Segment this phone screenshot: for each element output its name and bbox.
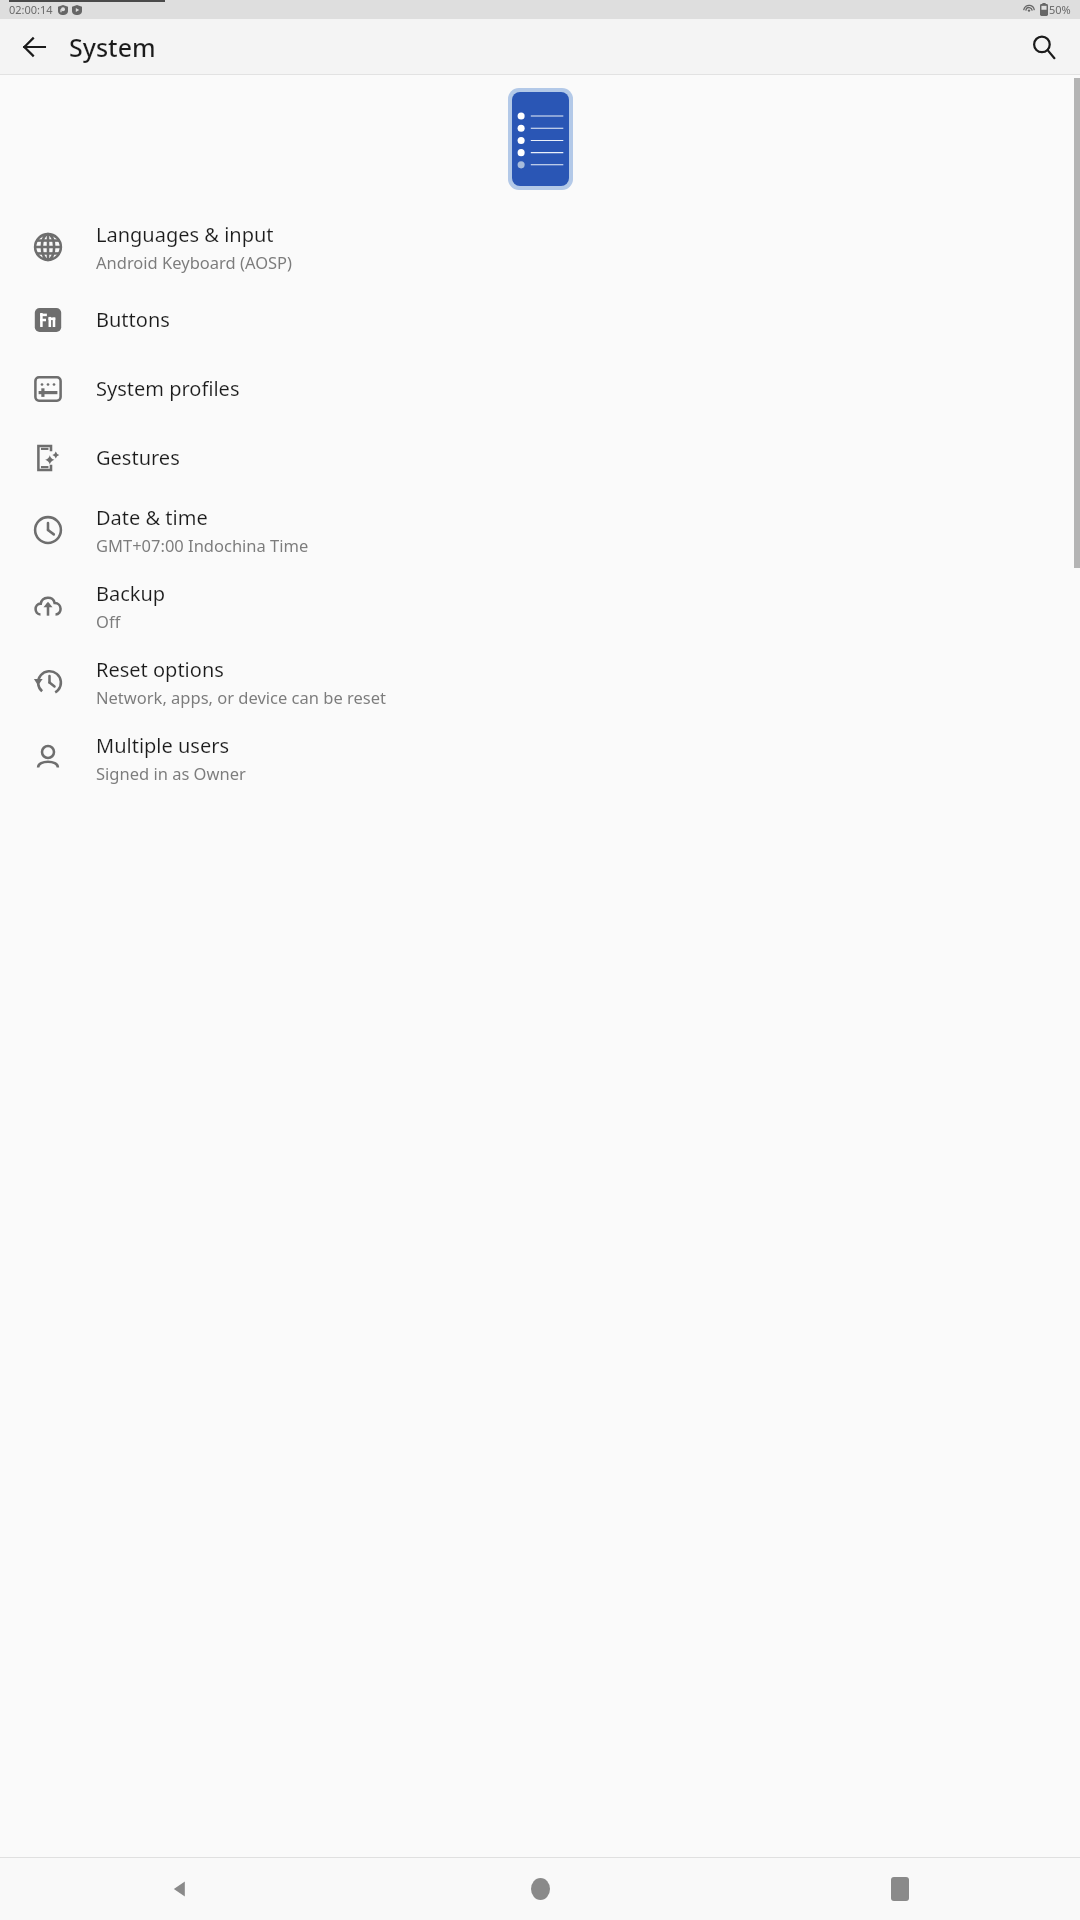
staticText: Multiple users [96, 732, 230, 759]
button[interactable]: Date & time [0, 492, 1080, 568]
button[interactable]: Gestures [0, 423, 1080, 492]
button[interactable]: Back [10, 23, 58, 71]
button[interactable]: Search [1020, 23, 1068, 71]
staticText: Backup [96, 580, 166, 607]
staticText: System [69, 30, 156, 64]
button[interactable]: Multiple users [0, 720, 1080, 796]
staticText: Gestures [96, 444, 180, 471]
button[interactable]: Recent apps [720, 1857, 1080, 1920]
staticText: System profiles [96, 375, 240, 402]
button[interactable]: System profiles [0, 354, 1080, 423]
staticText: Signed in as Owner [96, 762, 246, 784]
staticText: GMT+07:00 Indochina Time [96, 534, 309, 556]
staticText: Languages & input [96, 221, 274, 248]
button[interactable]: Reset options [0, 644, 1080, 720]
button[interactable]: Home [360, 1857, 720, 1920]
staticText: Android Keyboard (AOSP) [96, 251, 293, 273]
staticText: Reset options [96, 656, 224, 683]
button[interactable]: Back [0, 1857, 360, 1920]
staticText: Date & time [96, 504, 208, 531]
staticText: Network, apps, or device can be reset [96, 686, 386, 708]
button[interactable]: Backup [0, 568, 1080, 644]
button[interactable]: Languages & input [0, 209, 1080, 285]
staticText: 02:00:14 [9, 2, 53, 17]
staticText: Buttons [96, 306, 170, 333]
staticText: Off [96, 610, 121, 632]
staticText: 50% [1049, 2, 1071, 17]
button[interactable]: Buttons [0, 285, 1080, 354]
